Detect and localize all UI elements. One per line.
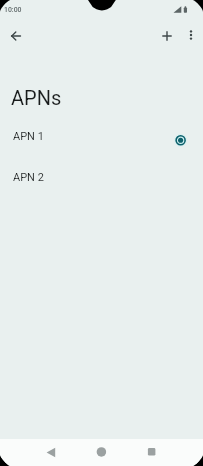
button[interactable]: More options xyxy=(177,21,203,49)
button[interactable]: Recent apps xyxy=(140,441,164,465)
staticText: 10:00 xyxy=(4,6,22,14)
button[interactable]: Navigate up xyxy=(2,22,30,50)
button[interactable]: APN 2 xyxy=(0,161,203,202)
button[interactable]: APN 1 xyxy=(0,120,203,161)
staticText: APN 1 xyxy=(13,130,44,143)
staticText: APNs xyxy=(11,86,62,109)
button[interactable]: Add APN xyxy=(153,22,181,50)
staticText: APN 2 xyxy=(13,171,44,184)
button[interactable]: Home xyxy=(90,441,114,465)
button[interactable]: Back xyxy=(39,441,63,465)
